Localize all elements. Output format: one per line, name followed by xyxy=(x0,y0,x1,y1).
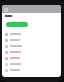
button[interactable] xyxy=(2,31,61,37)
button[interactable] xyxy=(6,22,28,27)
button[interactable] xyxy=(2,37,61,43)
button[interactable] xyxy=(2,43,61,49)
button[interactable] xyxy=(2,67,61,73)
button[interactable] xyxy=(2,61,61,67)
button[interactable] xyxy=(2,49,61,55)
button[interactable] xyxy=(2,55,61,61)
button[interactable]: Account xyxy=(4,8,8,12)
